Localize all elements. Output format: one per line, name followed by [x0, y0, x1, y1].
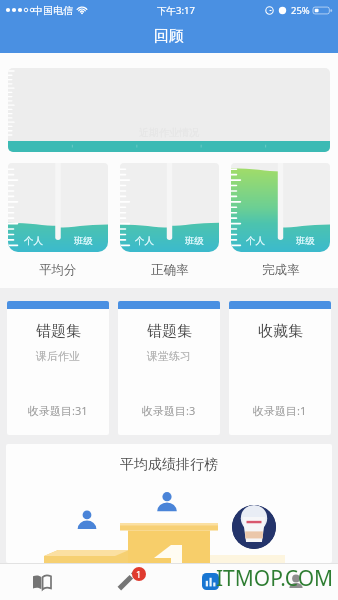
staticText: 错题集 [36, 322, 81, 341]
staticText: 班级 [296, 235, 315, 247]
staticText: 收录题目:3 [142, 403, 196, 418]
staticText: 班级 [185, 235, 204, 247]
staticText: 个人 [135, 235, 154, 247]
button[interactable]: 平均成绩排行榜 [6, 444, 332, 563]
staticText: 回顾 [154, 27, 184, 46]
staticText: 下午3:17 [157, 4, 195, 17]
button[interactable]: 收藏集 [229, 301, 331, 435]
staticText: 收录题目:31 [28, 403, 88, 418]
staticText: 1 [136, 568, 142, 580]
button[interactable]: 错题集 [118, 301, 220, 435]
staticText: 班级 [74, 235, 93, 247]
button[interactable]: 个人 [120, 163, 219, 252]
staticText: 25% [291, 4, 310, 17]
staticText: 错题集 [147, 322, 192, 341]
staticText: 收藏集 [258, 322, 303, 341]
button[interactable]: Book [0, 563, 84, 600]
staticText: 课后作业 [36, 349, 80, 363]
button[interactable]: Homework [84, 563, 168, 600]
staticText: 中国电信 [33, 4, 73, 17]
staticText: 平均成绩排行榜 [120, 456, 218, 474]
staticText: 个人 [246, 235, 265, 247]
button[interactable]: 近期作业情况 [8, 68, 330, 152]
button[interactable]: Profile [253, 563, 338, 600]
button[interactable]: 个人 [231, 163, 330, 252]
button[interactable]: 错题集 [7, 301, 109, 435]
staticText: ITMOP.COM [216, 564, 334, 593]
button[interactable]: Review [168, 563, 253, 600]
staticText: 平均分 [39, 262, 77, 278]
staticText: 正确率 [151, 262, 189, 278]
staticText: 完成率 [262, 262, 300, 278]
staticText: 个人 [24, 235, 43, 247]
button[interactable]: 个人 [8, 163, 108, 252]
staticText: 收录题目:1 [253, 403, 307, 418]
staticText: 课堂练习 [147, 349, 191, 363]
